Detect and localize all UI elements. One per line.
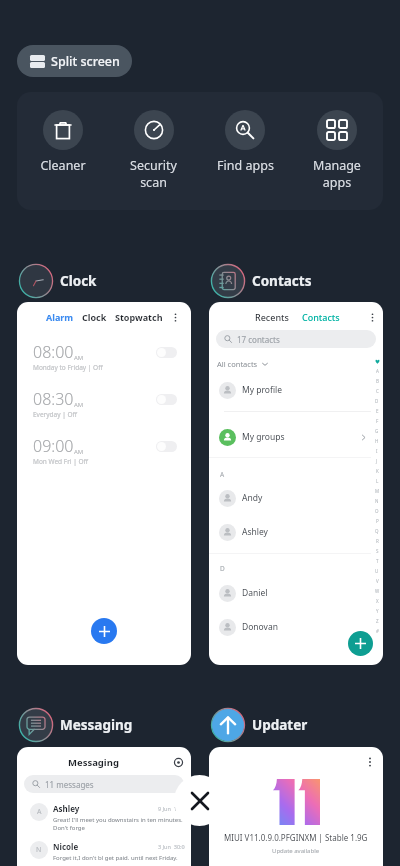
staticText: My groups xyxy=(242,431,285,443)
staticText: Andy xyxy=(242,492,263,504)
button[interactable]: 17 contacts xyxy=(216,330,376,348)
staticText: C xyxy=(376,388,379,394)
staticText: Monday to Friday | Off xyxy=(33,363,103,372)
staticText: AM xyxy=(74,354,84,362)
staticText: 17 contacts xyxy=(237,334,280,345)
button[interactable]: Close all xyxy=(174,775,225,826)
staticText: AM xyxy=(74,401,84,409)
button[interactable]: N xyxy=(17,841,191,862)
staticText: D xyxy=(220,564,225,573)
staticText: Security scan xyxy=(130,157,177,190)
button[interactable]: More options xyxy=(365,310,379,324)
button[interactable]: Contacts xyxy=(210,263,312,299)
button[interactable]: A xyxy=(17,803,191,832)
staticText: O xyxy=(375,508,379,514)
staticText: 08:30 xyxy=(33,388,74,410)
staticText: S xyxy=(376,548,379,554)
staticText: F xyxy=(376,418,379,424)
button[interactable]: My groups xyxy=(209,426,383,448)
button[interactable]: More options xyxy=(361,753,379,771)
staticText: X xyxy=(376,598,379,604)
staticText: Ashley xyxy=(242,526,268,538)
button[interactable]: Ashley xyxy=(209,521,383,543)
staticText: Everyday | Off xyxy=(33,410,78,419)
staticText: W xyxy=(375,588,380,594)
button[interactable]: Andy xyxy=(209,487,383,509)
button[interactable]: Recents xyxy=(209,302,383,665)
button[interactable]: Add alarm xyxy=(91,618,117,644)
button[interactable]: My profile xyxy=(209,379,383,401)
staticText: Nicole xyxy=(53,841,79,852)
staticText: Manage apps xyxy=(313,157,361,190)
button[interactable]: Settings xyxy=(171,755,185,769)
staticText: AM xyxy=(74,448,84,456)
staticText: V xyxy=(376,578,379,584)
staticText: Updater xyxy=(252,716,308,734)
button[interactable]: Messaging xyxy=(18,707,133,743)
staticText: J xyxy=(376,458,378,464)
staticText: My profile xyxy=(242,384,283,396)
staticText: A xyxy=(376,368,379,374)
button[interactable]: 09:00 xyxy=(17,435,191,466)
staticText: P xyxy=(376,518,379,524)
staticText: Update available xyxy=(272,847,320,855)
button[interactable]: More options xyxy=(167,309,183,325)
button[interactable]: Updater xyxy=(210,707,308,743)
button[interactable]: Add contact xyxy=(348,631,373,656)
staticText: Stopwatch xyxy=(115,311,163,323)
staticText: 3 Jun 30:0 xyxy=(158,843,185,850)
staticText: Mon Wed Fri | Off xyxy=(33,457,89,466)
button[interactable]: Donovan xyxy=(209,616,383,638)
staticText: Y xyxy=(376,608,379,614)
staticText: Cleaner xyxy=(40,157,86,174)
staticText: Contacts xyxy=(252,272,312,290)
staticText: U xyxy=(375,568,379,574)
staticText: 11 messages xyxy=(45,779,94,790)
button[interactable]: More options xyxy=(209,747,383,866)
button[interactable]: Split screen xyxy=(17,45,132,77)
staticText: N xyxy=(36,845,42,855)
button[interactable]: Security scan xyxy=(108,92,199,210)
staticText: Recents xyxy=(255,311,289,323)
staticText: H xyxy=(375,438,379,444)
staticText: A xyxy=(37,807,42,817)
button[interactable]: Cleaner xyxy=(17,92,108,210)
staticText: E xyxy=(376,408,379,414)
staticText: Clock xyxy=(60,272,97,290)
staticText: Ashley xyxy=(53,803,80,814)
staticText: K xyxy=(376,468,379,474)
staticText: N xyxy=(375,498,379,504)
staticText: Split screen xyxy=(51,53,120,70)
button[interactable]: Toggle alarm xyxy=(156,441,177,452)
button[interactable]: Daniel xyxy=(209,582,383,604)
staticText: All contacts xyxy=(217,359,258,369)
staticText: R xyxy=(376,538,379,544)
staticText: Find apps xyxy=(217,157,274,174)
button[interactable]: Manage apps xyxy=(291,92,383,210)
button[interactable]: Clock xyxy=(18,263,97,299)
staticText: L xyxy=(376,478,379,484)
staticText: Clock xyxy=(82,311,107,323)
button[interactable]: Find apps xyxy=(199,92,291,210)
button[interactable]: 08:00 xyxy=(17,341,191,372)
staticText: Alarm xyxy=(46,311,74,323)
staticText: Donovan xyxy=(242,621,278,633)
staticText: G xyxy=(375,428,379,434)
button[interactable]: Messaging xyxy=(17,747,191,866)
button[interactable]: 08:30 xyxy=(17,388,191,419)
staticText: Forget it,I don't bl get paid. until nex… xyxy=(53,854,178,862)
button[interactable]: Toggle alarm xyxy=(156,394,177,405)
staticText: M xyxy=(375,488,380,494)
staticText: Messaging xyxy=(68,756,119,769)
button[interactable]: Toggle alarm xyxy=(156,347,177,358)
staticText: Great! I'll meet you downstairs in ten m… xyxy=(53,816,183,832)
button[interactable]: Alarm xyxy=(17,302,191,665)
staticText: 9 Jun 10:1 xyxy=(158,805,185,812)
staticText: I xyxy=(376,448,378,454)
staticText: Q xyxy=(375,528,379,534)
button[interactable]: 11 messages xyxy=(24,775,184,793)
staticText: Contacts xyxy=(302,311,340,323)
staticText: 09:00 xyxy=(33,435,74,457)
staticText: D xyxy=(375,398,379,404)
button[interactable]: All contacts xyxy=(217,358,268,370)
